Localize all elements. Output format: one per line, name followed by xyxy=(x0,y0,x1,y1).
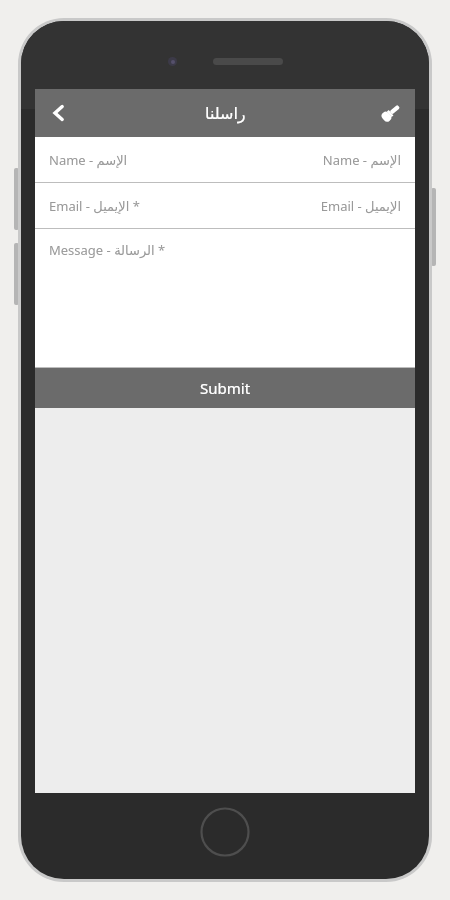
button[interactable]: Back xyxy=(35,89,83,137)
button[interactable]: Email - الإيميل * xyxy=(35,183,415,228)
staticText: Email - الإيميل * xyxy=(49,197,140,215)
button[interactable]: Message - الرسالة * xyxy=(35,229,415,367)
staticText: Name - الإسم xyxy=(49,151,128,169)
button[interactable]: Theme xyxy=(367,89,415,137)
staticText: Message - الرسالة * xyxy=(49,241,166,259)
button[interactable]: Submit xyxy=(35,368,415,408)
staticText: Name - الإسم xyxy=(322,151,401,169)
staticText: Submit xyxy=(200,378,251,398)
staticText: Email - الإيميل xyxy=(320,197,401,215)
button[interactable]: Name - الإسم xyxy=(35,137,415,182)
staticText: راسلنا xyxy=(205,104,246,123)
